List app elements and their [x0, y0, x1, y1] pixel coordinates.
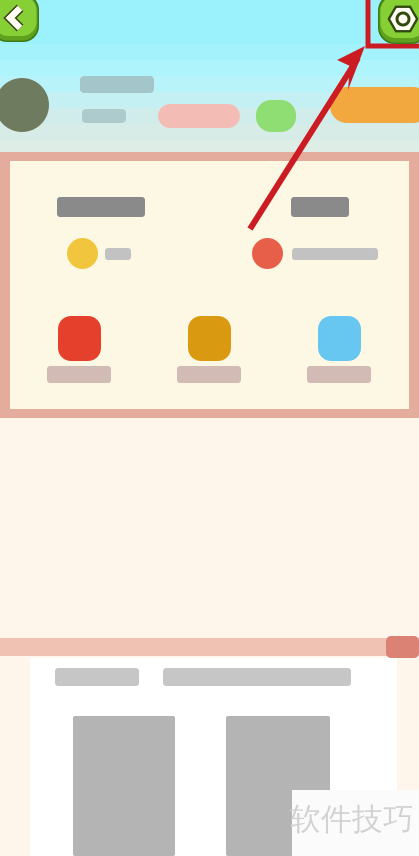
staticText: 软件技巧	[290, 800, 414, 838]
button[interactable]: Back	[0, 0, 39, 42]
button[interactable]: Settings	[378, 0, 419, 44]
